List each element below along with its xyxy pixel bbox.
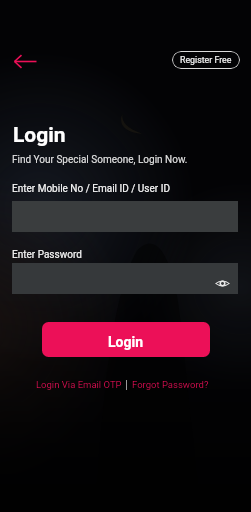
button[interactable]: Login Via Email OTP bbox=[32, 376, 126, 393]
staticText: Login bbox=[13, 123, 66, 148]
button[interactable] bbox=[12, 263, 238, 294]
staticText: Forgot Password? bbox=[132, 379, 209, 390]
staticText: Register Free bbox=[180, 55, 232, 65]
staticText: Enter Mobile No / Email ID / User ID bbox=[12, 183, 170, 195]
staticText: Enter Password bbox=[12, 249, 82, 261]
button[interactable]: Login bbox=[42, 322, 210, 357]
staticText: Login Via Email OTP bbox=[36, 379, 122, 390]
button[interactable]: Register Free bbox=[172, 51, 240, 69]
button[interactable]: Back bbox=[11, 47, 39, 75]
staticText: Login bbox=[108, 334, 144, 350]
staticText: Find Your Special Someone, Login Now. bbox=[12, 154, 188, 166]
button[interactable]: Show password bbox=[208, 269, 236, 297]
button[interactable]: Forgot Password? bbox=[127, 376, 214, 393]
